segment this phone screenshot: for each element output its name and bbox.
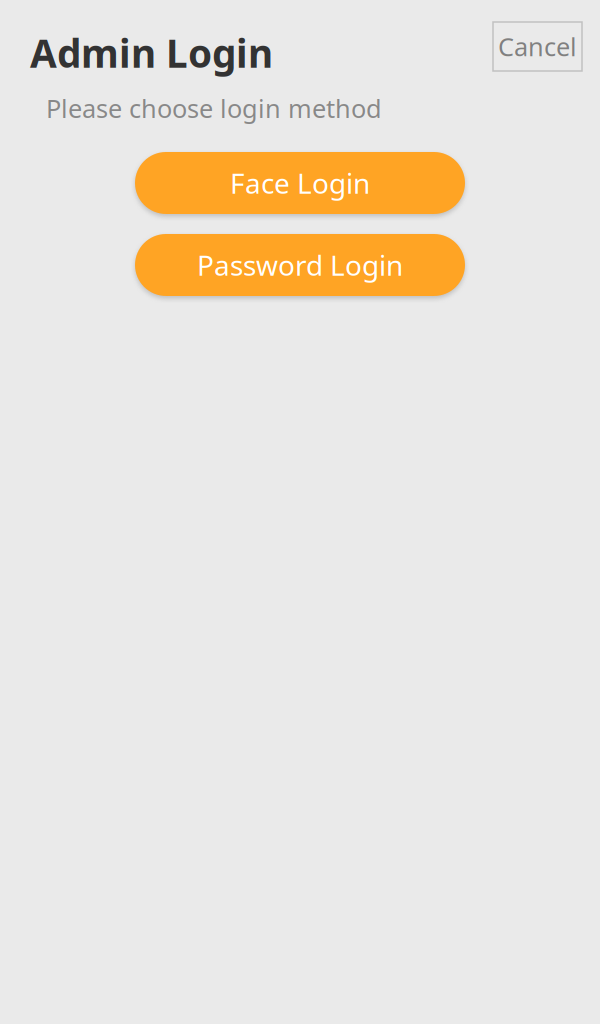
staticText: Please choose login method xyxy=(46,91,382,125)
staticText: Face Login xyxy=(230,164,370,202)
button[interactable]: Face Login xyxy=(135,152,465,214)
button[interactable]: Cancel xyxy=(493,22,582,71)
button[interactable]: Password Login xyxy=(135,234,465,296)
staticText: Admin Login xyxy=(30,27,273,78)
staticText: Cancel xyxy=(498,30,577,63)
staticText: Password Login xyxy=(197,246,403,284)
